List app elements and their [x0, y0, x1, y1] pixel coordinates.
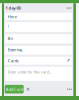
- staticText: Entering: [8, 47, 22, 52]
- staticText: An: [8, 35, 13, 41]
- button[interactable]: More options: [66, 85, 73, 93]
- staticText: i: [8, 23, 9, 29]
- staticText: 1 day (0): [5, 5, 20, 11]
- staticText: Cards: [8, 58, 19, 63]
- button[interactable]: Cards: [5, 57, 72, 65]
- button[interactable]: Cancel: [24, 85, 32, 93]
- staticText: Enter a title for this card...: [8, 69, 52, 75]
- button[interactable]: Entering: [5, 46, 72, 55]
- staticText: Add Card: [6, 86, 23, 92]
- button[interactable]: i: [5, 22, 72, 32]
- button[interactable]: Here: [5, 13, 72, 20]
- button[interactable]: List actions: [66, 5, 72, 11]
- button[interactable]: An: [5, 34, 72, 44]
- button[interactable]: Add Card: [5, 85, 24, 93]
- staticText: Here: [8, 14, 17, 19]
